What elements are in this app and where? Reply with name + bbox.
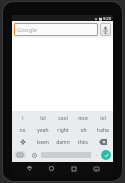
staticText: oh bbox=[80, 127, 87, 134]
button[interactable]: Keyboard bbox=[89, 162, 103, 175]
staticText: yeah bbox=[37, 127, 49, 134]
button[interactable]: thks bbox=[73, 136, 93, 148]
staticText: cool bbox=[58, 115, 68, 122]
button[interactable]: Recent apps bbox=[67, 162, 81, 175]
button[interactable]: Google bbox=[14, 23, 98, 36]
staticText: been bbox=[37, 139, 49, 146]
staticText: thks bbox=[78, 139, 88, 146]
button[interactable]: Settings bbox=[30, 151, 38, 159]
staticText: i bbox=[22, 115, 24, 122]
button[interactable]: lol bbox=[93, 112, 113, 124]
button[interactable]: Back bbox=[22, 162, 36, 175]
button[interactable]: Search bbox=[101, 150, 111, 160]
staticText: . bbox=[96, 151, 98, 158]
button[interactable]: . bbox=[94, 150, 99, 159]
staticText: Google bbox=[17, 26, 38, 34]
button[interactable]: Switch keyboard bbox=[14, 151, 26, 158]
button[interactable]: cool bbox=[53, 112, 73, 124]
staticText: lol bbox=[100, 115, 106, 122]
button[interactable]: no bbox=[12, 124, 33, 136]
staticText: lol bbox=[40, 115, 46, 122]
button[interactable]: Backspace bbox=[93, 136, 113, 148]
staticText: no bbox=[19, 127, 26, 134]
button[interactable]: been bbox=[33, 136, 53, 148]
staticText: nice bbox=[78, 115, 88, 122]
button[interactable]: Emoji bbox=[12, 136, 33, 148]
staticText: haha bbox=[97, 127, 109, 134]
staticText: 9:20 bbox=[103, 16, 111, 21]
button[interactable]: oh bbox=[73, 124, 93, 136]
button[interactable]: damn bbox=[53, 136, 73, 148]
button[interactable]: yeah bbox=[33, 124, 53, 136]
button[interactable]: Home bbox=[44, 162, 58, 175]
button[interactable]: haha bbox=[93, 124, 113, 136]
button[interactable]: Voice search bbox=[100, 23, 111, 36]
button[interactable]: nice bbox=[73, 112, 93, 124]
button[interactable]: right bbox=[53, 124, 73, 136]
staticText: damn bbox=[56, 139, 70, 146]
staticText: right bbox=[57, 127, 69, 134]
button[interactable]: lol bbox=[33, 112, 53, 124]
button[interactable]: i bbox=[12, 112, 33, 124]
